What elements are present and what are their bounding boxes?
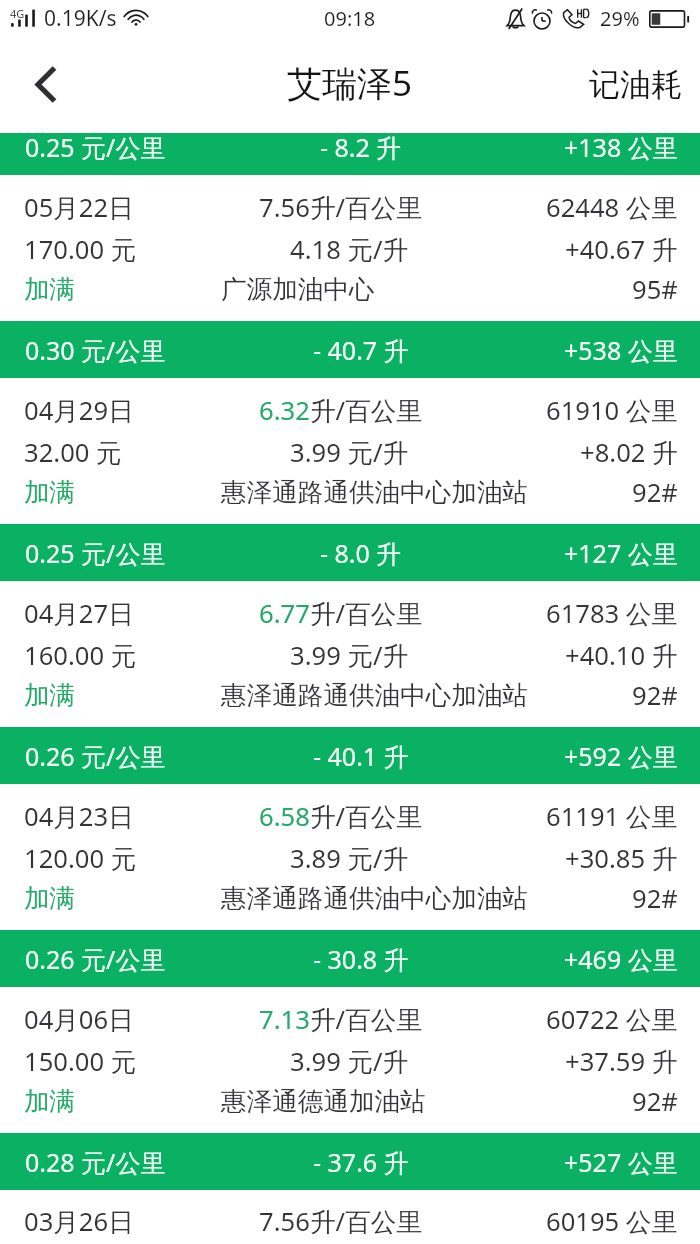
staticText: 3.99 元/升 [290,1044,409,1079]
staticText: 0.26 元/公里 [25,739,166,773]
staticText: 惠泽通路通供油中心加油站 [221,882,529,914]
button[interactable]: 0.28 元/公里 [0,1133,700,1229]
staticText: 广源加油中心 [221,273,375,305]
staticText: - 37.6 升 [313,1145,409,1179]
staticText: 惠泽通路通供油中心加油站 [221,679,529,711]
staticText: 04月06日 [24,1002,134,1037]
staticText: 04月23日 [24,799,134,834]
staticText: +469 公里 [564,942,678,976]
staticText: - 30.8 升 [313,942,409,976]
staticText: 升/百公里 [310,393,422,428]
staticText: 04月27日 [24,596,134,631]
staticText: 0.25 元/公里 [25,133,166,164]
staticText: 05月22日 [24,190,134,225]
staticText: 惠泽通路通供油中心加油站 [221,476,529,508]
staticText: +127 公里 [564,536,678,570]
staticText: 加满 [24,882,76,914]
staticText: 7.13 [259,1002,310,1037]
staticText: 加满 [24,476,76,508]
staticText: 170.00 元 [24,232,137,267]
staticText: - 40.7 升 [313,333,409,367]
staticText: - 40.1 升 [313,739,409,773]
button[interactable]: 0.26 元/公里 [0,727,700,930]
button[interactable]: Back [0,36,96,133]
staticText: +592 公里 [564,739,678,773]
staticText: +37.59 升 [565,1044,678,1079]
staticText: 92# [632,678,678,713]
staticText: 0.25 元/公里 [25,536,166,570]
staticText: 120.00 元 [24,841,137,876]
staticText: 3.99 元/升 [290,638,409,673]
staticText: 升/百公里 [310,190,422,225]
staticText: 艾瑞泽5 [287,59,413,107]
staticText: +40.10 升 [565,638,678,673]
button[interactable]: 0.30 元/公里 [0,321,700,524]
staticText: 61191 公里 [546,799,678,834]
staticText: 09:18 [324,5,376,32]
button[interactable]: 0.25 元/公里 [0,133,700,321]
staticText: 29% [600,5,640,32]
staticText: 升/百公里 [310,596,422,631]
staticText: 92# [632,881,678,916]
staticText: 升/百公里 [310,1204,422,1239]
staticText: 7.56 [259,190,310,225]
staticText: 6.77 [259,596,310,631]
button[interactable]: 0.25 元/公里 [0,524,700,727]
staticText: 60195 公里 [546,1204,678,1239]
staticText: 92# [632,1084,678,1119]
staticText: 0.26 元/公里 [25,942,166,976]
staticText: 4.18 元/升 [290,232,409,267]
staticText: 加满 [24,1085,76,1117]
staticText: 95# [632,272,678,307]
staticText: +538 公里 [564,333,678,367]
staticText: 6.58 [259,799,310,834]
staticText: 加满 [24,679,76,711]
staticText: 32.00 元 [24,435,122,470]
staticText: 60722 公里 [546,1002,678,1037]
staticText: 04月29日 [24,393,134,428]
staticText: 0.19K/s [44,4,117,33]
staticText: +30.85 升 [565,841,678,876]
staticText: 惠泽通德通加油站 [221,1085,426,1117]
staticText: 6.32 [259,393,310,428]
staticText: 0.28 元/公里 [25,1145,166,1179]
staticText: 升/百公里 [310,799,422,834]
staticText: 92# [632,475,678,510]
staticText: 4G [10,6,25,21]
button[interactable]: 0.26 元/公里 [0,930,700,1133]
staticText: 记油耗 [589,65,682,104]
staticText: 0.30 元/公里 [25,333,166,367]
staticText: 160.00 元 [24,638,137,673]
button[interactable]: 记油耗 [565,36,700,133]
staticText: 61783 公里 [546,596,678,631]
staticText: +40.67 升 [565,232,678,267]
staticText: +527 公里 [564,1145,678,1179]
staticText: +8.02 升 [580,435,678,470]
staticText: +138 公里 [564,133,678,164]
staticText: - 8.2 升 [320,133,402,164]
staticText: 3.99 元/升 [290,435,409,470]
staticText: 62448 公里 [546,190,678,225]
staticText: 加满 [24,273,76,305]
staticText: 3.89 元/升 [290,841,409,876]
staticText: 7.56 [259,1204,310,1239]
staticText: 61910 公里 [546,393,678,428]
staticText: 03月26日 [24,1204,134,1239]
staticText: - 8.0 升 [320,536,402,570]
staticText: 升/百公里 [310,1002,422,1037]
staticText: 150.00 元 [24,1044,137,1079]
